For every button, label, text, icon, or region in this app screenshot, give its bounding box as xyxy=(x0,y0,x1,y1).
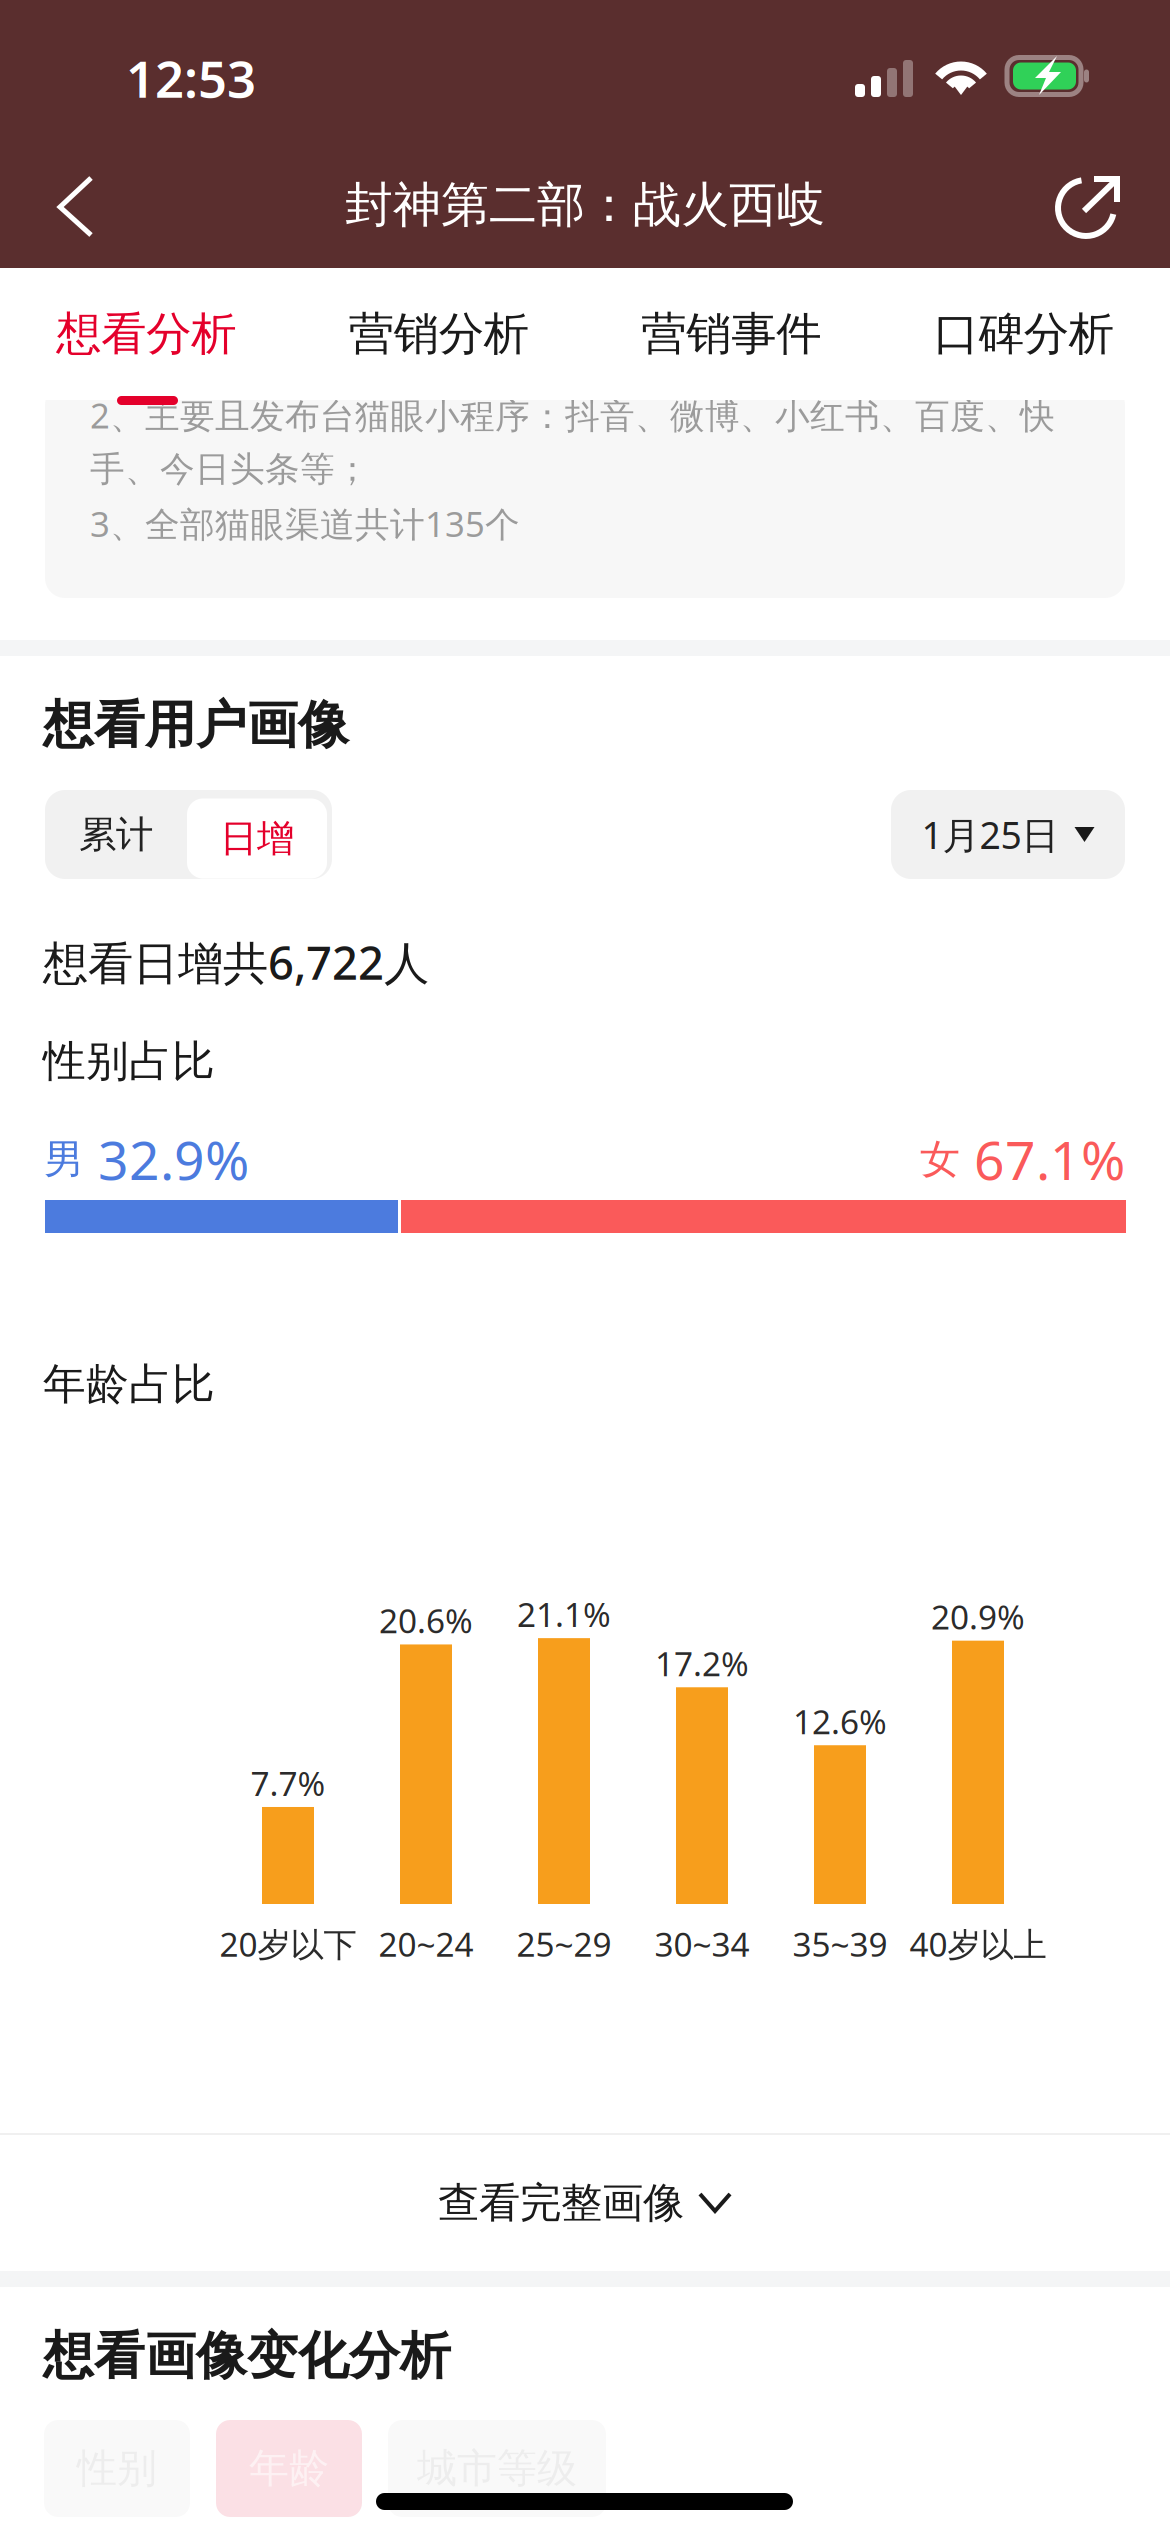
staticText: 30~34 xyxy=(654,1922,749,1966)
staticText: 日增 xyxy=(220,816,294,861)
staticText: 20.9% xyxy=(931,1594,1025,1639)
staticText: 25~29 xyxy=(516,1922,611,1966)
staticText: 年龄占比 xyxy=(43,1358,215,1410)
staticText: 21.1% xyxy=(517,1592,611,1636)
staticText: 女 xyxy=(920,1135,960,1184)
staticText: 20岁以下 xyxy=(219,1922,356,1966)
button[interactable]: 1月25日 xyxy=(891,790,1125,879)
staticText: 手、今日头条等； xyxy=(90,448,370,491)
staticText: 67.1% xyxy=(960,1124,1125,1195)
staticText: 年龄 xyxy=(249,2444,329,2493)
button[interactable]: 口碑分析 xyxy=(877,268,1170,400)
button[interactable]: 想看分析 xyxy=(0,268,292,400)
button[interactable]: 查看完整画像 xyxy=(0,2135,1170,2271)
staticText: 17.2% xyxy=(655,1641,749,1685)
staticText: 20.6% xyxy=(379,1598,473,1643)
staticText: 12.6% xyxy=(793,1699,887,1743)
staticText: 封神第二部：战火西岐 xyxy=(345,175,825,234)
staticText: 口碑分析 xyxy=(934,306,1114,362)
button[interactable]: 城市等级 xyxy=(388,2420,606,2517)
staticText: 查看完整画像 xyxy=(438,2178,684,2228)
staticText: 营销事件 xyxy=(641,306,821,362)
staticText: 7.7% xyxy=(250,1761,325,1805)
button[interactable]: 营销事件 xyxy=(585,268,877,400)
button[interactable]: 年龄 xyxy=(216,2420,362,2517)
staticText: 40岁以上 xyxy=(909,1922,1046,1966)
staticText: 2、主要且发布台猫眼小程序：抖音、微博、小红书、百度、快 xyxy=(90,392,1055,438)
staticText: 3、全部猫眼渠道共计135个 xyxy=(90,501,520,547)
button[interactable]: 累计 xyxy=(45,790,187,879)
staticText: 男 xyxy=(44,1135,84,1184)
staticText: 12:53 xyxy=(126,44,256,112)
staticText: 想看画像变化分析 xyxy=(43,2325,451,2387)
staticText: 20~24 xyxy=(378,1922,473,1966)
staticText: 性别占比 xyxy=(43,1035,215,1087)
button[interactable]: Back xyxy=(25,148,129,265)
staticText: 城市等级 xyxy=(417,2444,577,2493)
staticText: 性别 xyxy=(77,2444,157,2493)
staticText: 想看用户画像 xyxy=(43,694,349,756)
staticText: 想看日增共6,722人 xyxy=(43,932,429,992)
staticText: 累计 xyxy=(79,812,153,857)
button[interactable]: 营销分析 xyxy=(292,268,585,400)
button[interactable]: 日增 xyxy=(187,798,327,878)
staticText: 营销分析 xyxy=(349,306,529,362)
button[interactable]: Share xyxy=(1032,148,1160,268)
staticText: 1月25日 xyxy=(921,810,1058,859)
staticText: 想看分析 xyxy=(56,306,236,362)
staticText: 35~39 xyxy=(792,1922,887,1966)
staticText: 32.9% xyxy=(84,1124,249,1195)
